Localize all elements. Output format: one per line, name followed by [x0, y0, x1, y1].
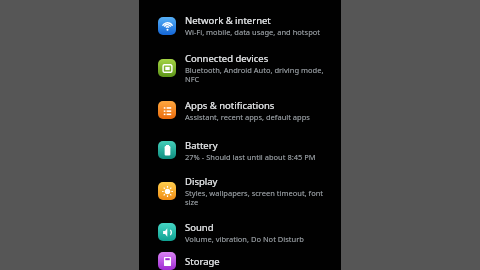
staticText: Connected devices [185, 52, 269, 65]
staticText: Assistant, recent apps, default apps [185, 112, 310, 122]
button[interactable]: Storage [139, 252, 341, 270]
button[interactable]: Apps & notifications [139, 90, 341, 130]
button[interactable]: Connected devices [139, 46, 341, 90]
other: Sound [158, 223, 176, 241]
button[interactable]: Sound [139, 212, 341, 252]
staticText: Volume, vibration, Do Not Disturb [185, 234, 304, 244]
staticText: Battery [185, 139, 218, 152]
other: Connected devices [158, 59, 176, 77]
button[interactable]: Display [139, 170, 341, 212]
staticText: Storage [185, 255, 220, 268]
staticText: Apps & notifications [185, 99, 275, 112]
other: Display [158, 182, 176, 200]
other: Battery [158, 141, 176, 159]
button[interactable]: Battery [139, 130, 341, 170]
staticText: Bluetooth, Android Auto, driving mode, N… [185, 65, 335, 85]
staticText: 27% - Should last until about 8:45 PM [185, 152, 316, 162]
other: Apps & notifications [158, 101, 176, 119]
staticText: Wi-Fi, mobile, data usage, and hotspot [185, 27, 320, 37]
button[interactable]: Network & internet [139, 0, 341, 46]
other: Storage [158, 252, 176, 270]
staticText: Styles, wallpapers, screen timeout, font… [185, 188, 335, 208]
staticText: Network & internet [185, 14, 271, 27]
other: Network & internet [158, 17, 176, 35]
staticText: Display [185, 175, 218, 188]
staticText: Sound [185, 221, 214, 234]
